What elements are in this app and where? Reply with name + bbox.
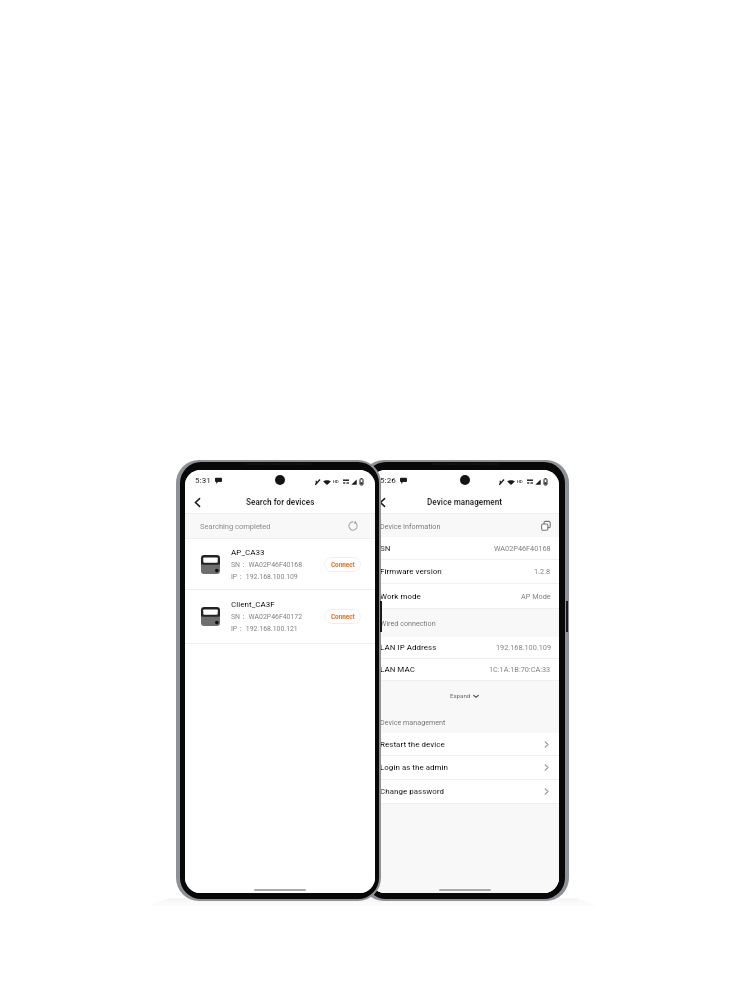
button[interactable]: LAN MAC	[370, 659, 559, 680]
staticText: Device management	[427, 497, 503, 507]
staticText: 1C:1A:1B:70:CA:33	[489, 665, 551, 674]
staticText: IP： 192.168.100.121	[231, 624, 298, 633]
staticText: IP： 192.168.100.109	[231, 572, 298, 581]
button[interactable]: Back	[376, 496, 389, 509]
staticText: Login as the admin	[380, 763, 448, 772]
staticText: HD	[517, 479, 523, 484]
staticText: Connect	[331, 561, 355, 568]
staticText: Restart the device	[380, 740, 445, 749]
staticText: HD	[333, 479, 339, 484]
staticText: Work mode	[380, 592, 421, 601]
staticText: Expand	[450, 692, 471, 699]
button[interactable]: Expand	[370, 681, 559, 710]
button[interactable]: Firmware version	[370, 560, 559, 583]
button[interactable]: Work mode	[370, 584, 559, 608]
staticText: SN： WA02P46F40168	[231, 560, 303, 569]
staticText: Connect	[331, 613, 355, 620]
staticText: SN： WA02P46F40172	[231, 612, 303, 621]
staticText: 1.2.8	[534, 567, 551, 576]
staticText: 5:26	[380, 476, 396, 485]
button[interactable]: Change password	[370, 780, 559, 803]
staticText: Change password	[380, 787, 445, 796]
button[interactable]: Login as the admin	[370, 756, 559, 779]
staticText: AP_CA33	[231, 548, 265, 557]
button[interactable]: Restart the device	[370, 733, 559, 755]
button[interactable]: Client_CA3F	[185, 590, 375, 643]
staticText: 192.168.100.109	[496, 643, 551, 652]
staticText: AP Mode	[521, 592, 551, 601]
staticText: LAN IP Address	[380, 643, 437, 652]
staticText: SN	[380, 544, 391, 553]
staticText: Wired connection	[380, 619, 436, 627]
staticText: Device management	[380, 718, 446, 726]
staticText: Device Information	[380, 522, 441, 530]
staticText: Firmware version	[380, 567, 442, 576]
button[interactable]: AP_CA33	[185, 539, 375, 589]
button[interactable]: Refresh	[348, 521, 358, 531]
staticText: WA02P46F40168	[494, 544, 551, 553]
button[interactable]: Connect	[324, 609, 361, 624]
button[interactable]: Connect	[324, 557, 361, 572]
staticText: Client_CA3F	[231, 600, 275, 609]
button[interactable]: Copy	[541, 521, 551, 531]
staticText: Searching completed	[200, 522, 271, 531]
button[interactable]: SN	[370, 537, 559, 559]
staticText: Search for devices	[246, 497, 315, 507]
staticText: 5:31	[195, 476, 211, 485]
button[interactable]: Back	[191, 496, 204, 509]
button[interactable]: LAN IP Address	[370, 637, 559, 658]
staticText: LAN MAC	[380, 665, 415, 674]
